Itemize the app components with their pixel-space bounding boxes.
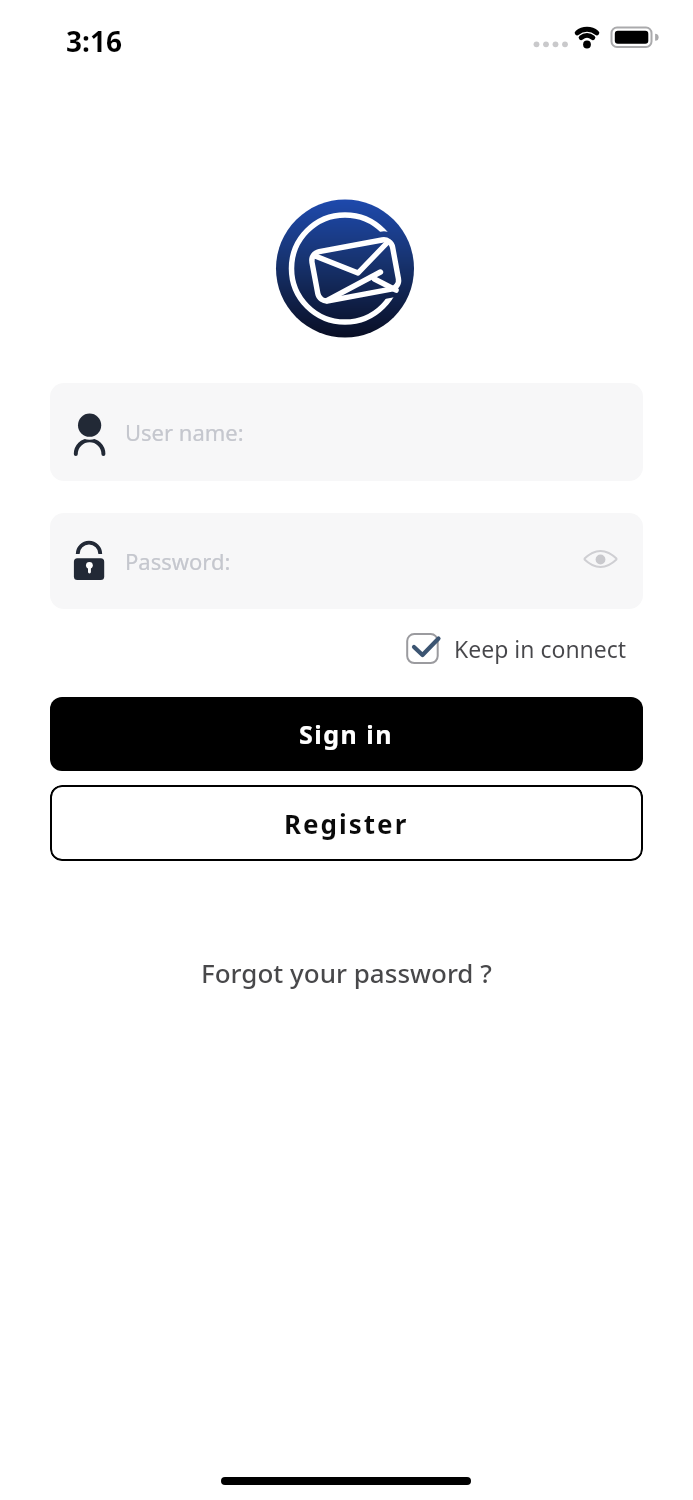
button[interactable]: Register xyxy=(50,785,643,861)
button[interactable]: Sign in xyxy=(50,697,643,771)
button[interactable]: Keep in connect xyxy=(403,626,633,670)
button[interactable]: User name: xyxy=(50,383,643,481)
staticText: Forgot your password ? xyxy=(201,955,492,990)
staticText: Sign in xyxy=(299,717,394,751)
staticText: User name: xyxy=(125,417,244,447)
staticText: 3:16 xyxy=(66,22,122,60)
staticText: Register xyxy=(284,806,409,841)
staticText: Password: xyxy=(125,546,231,576)
button[interactable]: Password: xyxy=(50,513,643,609)
button[interactable]: Forgot your password ? xyxy=(0,955,693,990)
staticText: Keep in connect xyxy=(454,633,627,664)
